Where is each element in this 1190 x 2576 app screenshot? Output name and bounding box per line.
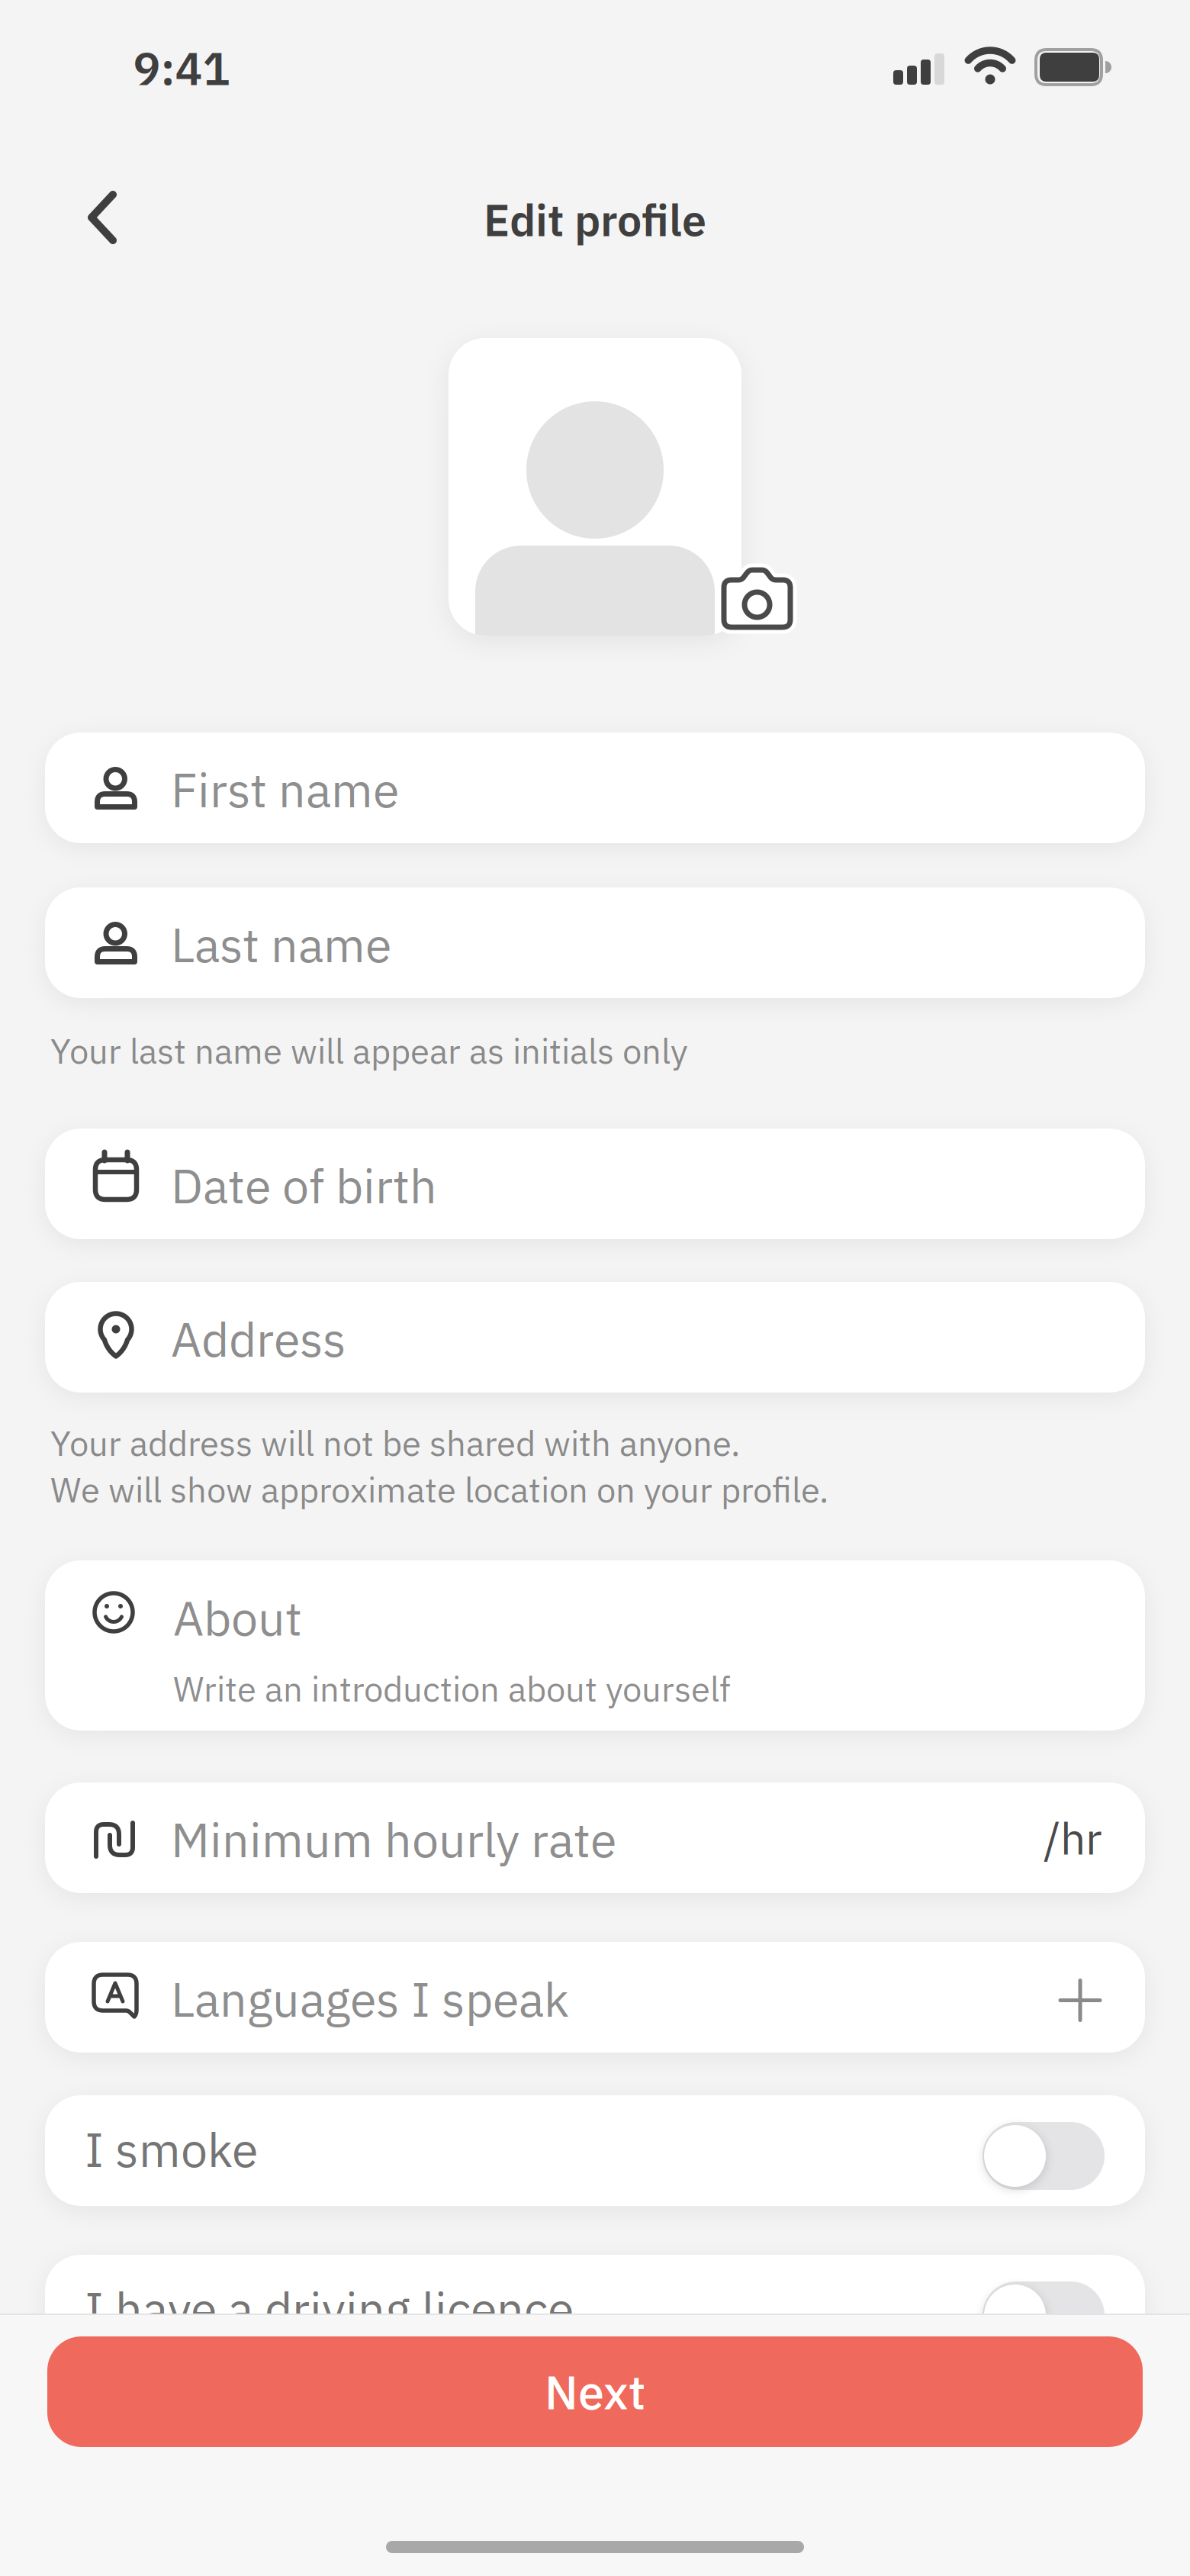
button[interactable]: About [45,1560,1145,1731]
button[interactable]: Add profile photo [449,338,741,636]
button[interactable]: I smoke [45,2095,1145,2206]
staticText: Next [545,2361,645,2422]
staticText: 9:41 [133,38,230,98]
staticText: We will show approximate location on you… [50,1467,828,1512]
button[interactable]: Languages I speak [45,1942,1145,2053]
button[interactable]: First name [45,733,1145,843]
staticText: About [173,1587,302,1649]
staticText: I have a driving licence [85,2278,574,2340]
staticText: Edit profile [484,191,706,248]
staticText: /hr [1044,1809,1102,1867]
button[interactable]: Address [45,1282,1145,1393]
button[interactable]: Next [47,2336,1143,2447]
staticText: Your address will not be shared with any… [50,1420,740,1465]
staticText: Write an introduction about yourself [173,1666,731,1711]
staticText: Date of birth [171,1154,437,1217]
staticText: Address [171,1308,346,1370]
button[interactable]: Minimum hourly rate [45,1782,1145,1893]
staticText: Languages I speak [171,1968,569,2030]
button[interactable]: I have a driving licence [45,2255,1145,2365]
button[interactable]: Last name [45,887,1145,998]
staticText: Minimum hourly rate [171,1808,616,1870]
staticText: First name [171,758,399,820]
staticText: Your last name will appear as initials o… [50,1028,688,1073]
staticText: Last name [171,913,391,975]
button[interactable]: Date of birth [45,1129,1145,1239]
button[interactable]: Back [72,175,133,259]
staticText: I smoke [85,2118,258,2180]
